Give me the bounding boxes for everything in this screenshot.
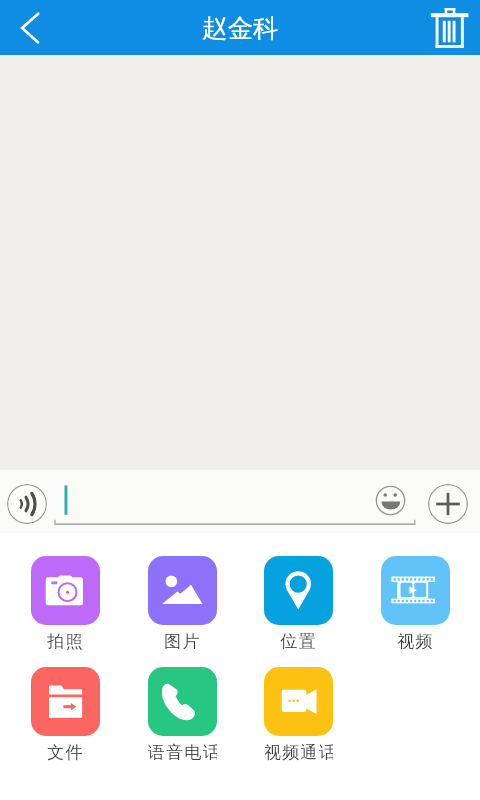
button[interactable]: Back	[0, 1, 54, 55]
button[interactable]: Delete	[426, 1, 480, 55]
staticText: 视频	[381, 631, 450, 652]
button[interactable]: 语音电话	[148, 667, 217, 763]
staticText: 文件	[31, 742, 100, 763]
staticText: 图片	[148, 631, 217, 652]
button[interactable]: Emoji	[374, 484, 407, 517]
staticText: 语音电话	[148, 742, 217, 763]
button[interactable]: 拍照	[31, 556, 100, 652]
button[interactable]: 文件	[31, 667, 100, 763]
staticText: 视频通话	[264, 742, 333, 763]
staticText: 位置	[264, 631, 333, 652]
button[interactable]: Voice message	[7, 484, 47, 524]
button[interactable]: 视频	[381, 556, 450, 652]
button[interactable]: 视频通话	[264, 667, 333, 763]
staticText: 拍照	[31, 631, 100, 652]
button[interactable]: 位置	[264, 556, 333, 652]
staticText: 赵金科	[202, 12, 279, 44]
button[interactable]: 图片	[148, 556, 217, 652]
button[interactable]: More	[428, 484, 468, 524]
